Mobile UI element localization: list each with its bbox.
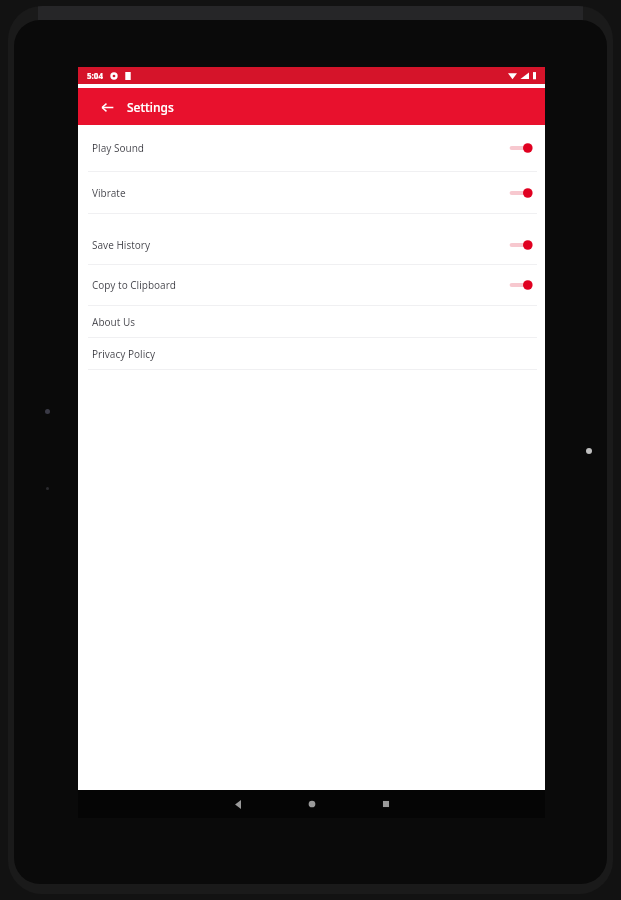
button[interactable]: Toggle [507,140,533,156]
staticText: Save History [92,238,151,252]
button[interactable]: Play Sound [78,125,545,171]
button[interactable]: Home [275,790,349,818]
staticText: About Us [92,315,136,329]
staticText: Vibrate [92,186,126,200]
staticText: Copy to Clipboard [92,278,176,292]
button[interactable]: Back [94,94,120,120]
button[interactable]: Back [201,790,275,818]
button[interactable]: About Us [78,306,545,337]
button[interactable]: Vibrate [78,172,545,213]
staticText: Settings [127,99,174,115]
button[interactable]: Recent apps [349,790,423,818]
button[interactable]: Copy to Clipboard [78,265,545,305]
staticText: Privacy Policy [92,347,156,361]
button[interactable]: Save History [78,226,545,264]
button[interactable]: Toggle [507,185,533,201]
staticText: Play Sound [92,141,144,155]
button[interactable]: Privacy Policy [78,338,545,369]
button[interactable]: Toggle [507,237,533,253]
staticText: 5:04 [87,70,103,81]
button[interactable]: Toggle [507,277,533,293]
